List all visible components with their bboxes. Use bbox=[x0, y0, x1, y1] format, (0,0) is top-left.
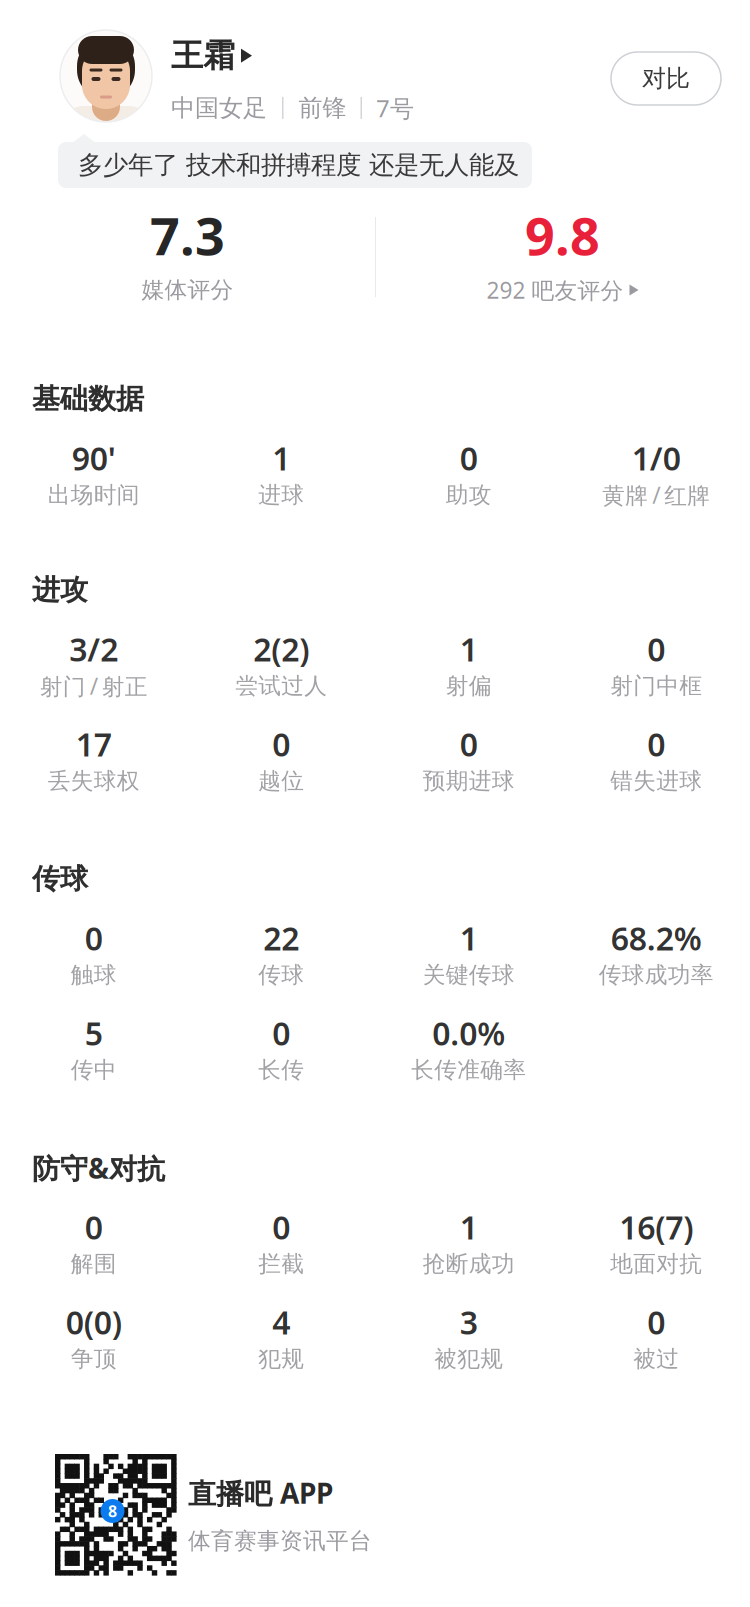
staticText: 王霜 bbox=[171, 36, 235, 75]
staticText: 3 bbox=[460, 1301, 478, 1343]
staticText: 0 bbox=[272, 1012, 290, 1054]
staticText: 0 bbox=[85, 917, 103, 959]
staticText: 前锋 bbox=[298, 93, 346, 123]
staticText: 传球 bbox=[258, 961, 304, 989]
staticText: 9.8 bbox=[525, 200, 600, 270]
button[interactable]: 对比 bbox=[611, 52, 721, 105]
button[interactable]: 292 吧友评分 bbox=[486, 275, 638, 305]
staticText: 黄牌 / 红牌 bbox=[602, 480, 710, 510]
staticText: 4 bbox=[272, 1301, 290, 1343]
staticText: 1 bbox=[460, 917, 478, 959]
staticText: 17 bbox=[76, 723, 112, 765]
staticText: 0 bbox=[272, 723, 290, 765]
staticText: 0 bbox=[85, 1206, 103, 1248]
staticText: 5 bbox=[85, 1012, 103, 1054]
staticText: 犯规 bbox=[258, 1345, 304, 1373]
staticText: 传中 bbox=[71, 1056, 117, 1084]
staticText: 0 bbox=[647, 723, 665, 765]
staticText: 媒体评分 bbox=[141, 276, 233, 304]
staticText: 直播吧 APP bbox=[188, 1474, 333, 1512]
staticText: 8 bbox=[108, 1500, 117, 1522]
staticText: 体育赛事资讯平台 bbox=[188, 1527, 372, 1555]
staticText: 射门中框 bbox=[610, 672, 702, 700]
staticText: 7.3 bbox=[150, 200, 225, 270]
staticText: 传球成功率 bbox=[599, 961, 714, 989]
staticText: 射门 / 射正 bbox=[40, 671, 148, 701]
staticText: 0 bbox=[647, 1301, 665, 1343]
staticText: 对比 bbox=[642, 64, 690, 93]
staticText: 争顶 bbox=[71, 1345, 117, 1373]
staticText: 地面对抗 bbox=[610, 1250, 702, 1278]
staticText: 0 bbox=[272, 1206, 290, 1248]
staticText: 多少年了 技术和拼搏程度 还是无人能及 bbox=[78, 149, 519, 180]
staticText: 进球 bbox=[258, 481, 304, 509]
staticText: 0 bbox=[647, 628, 665, 670]
staticText: 1 bbox=[460, 628, 478, 670]
staticText: 传球 bbox=[32, 862, 88, 896]
staticText: 射偏 bbox=[446, 672, 492, 700]
staticText: 关键传球 bbox=[423, 961, 515, 989]
staticText: 丢失球权 bbox=[48, 767, 140, 795]
staticText: 1 bbox=[460, 1206, 478, 1248]
staticText: 长传准确率 bbox=[411, 1056, 526, 1084]
staticText: 0 bbox=[460, 723, 478, 765]
staticText: 16(7) bbox=[619, 1206, 693, 1248]
staticText: 被犯规 bbox=[434, 1345, 503, 1373]
staticText: 0(0) bbox=[66, 1301, 122, 1343]
staticText: 进攻 bbox=[32, 573, 88, 607]
staticText: 出场时间 bbox=[48, 481, 140, 509]
button[interactable]: 王霜 bbox=[171, 36, 252, 75]
staticText: 0.0% bbox=[432, 1012, 505, 1054]
staticText: 解围 bbox=[71, 1250, 117, 1278]
staticText: 基础数据 bbox=[32, 382, 144, 416]
staticText: 抢断成功 bbox=[423, 1250, 515, 1278]
staticText: 拦截 bbox=[258, 1250, 304, 1278]
staticText: 中国女足 bbox=[171, 93, 267, 123]
staticText: 68.2% bbox=[611, 917, 702, 959]
staticText: 被过 bbox=[633, 1345, 679, 1373]
staticText: 0 bbox=[460, 437, 478, 479]
staticText: 错失进球 bbox=[610, 767, 702, 795]
staticText: 防守&对抗 bbox=[32, 1149, 165, 1187]
staticText: 2(2) bbox=[253, 628, 309, 670]
staticText: 1/0 bbox=[632, 437, 681, 479]
staticText: 3/2 bbox=[69, 628, 118, 670]
staticText: 助攻 bbox=[446, 481, 492, 509]
staticText: 1 bbox=[272, 437, 290, 479]
staticText: 7号 bbox=[376, 92, 414, 124]
staticText: 触球 bbox=[71, 961, 117, 989]
staticText: 22 bbox=[263, 917, 299, 959]
staticText: 尝试过人 bbox=[235, 672, 327, 700]
staticText: 长传 bbox=[258, 1056, 304, 1084]
staticText: 90' bbox=[72, 437, 116, 479]
staticText: 预期进球 bbox=[423, 767, 515, 795]
staticText: 越位 bbox=[258, 767, 304, 795]
button[interactable]: 球员头像 bbox=[60, 30, 152, 122]
button[interactable]: 8 bbox=[55, 1454, 695, 1574]
staticText: 292 吧友评分 bbox=[486, 275, 623, 305]
